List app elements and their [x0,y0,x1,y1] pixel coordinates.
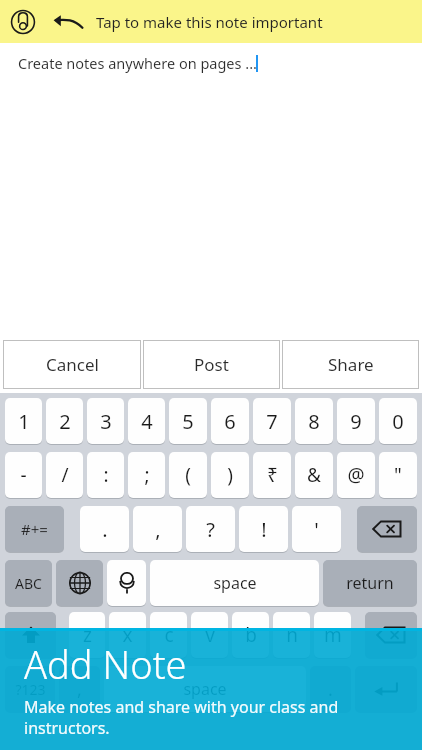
other: Back [52,11,84,33]
button[interactable] [5,612,56,658]
staticText: ) [227,462,233,488]
button[interactable]: " [379,452,417,498]
staticText: - [20,462,27,488]
staticText: Cancel [46,353,99,376]
button[interactable]: 2 [46,398,83,444]
staticText: 8 [308,408,320,435]
button[interactable]: 3 [87,398,124,444]
staticText: Share [328,353,374,376]
button[interactable]: - [5,452,42,498]
staticText: #+= [21,519,48,539]
staticText: b [245,622,257,648]
button[interactable]: @ [337,452,375,498]
staticText: 3 [100,408,112,435]
staticText: 2 [59,408,71,435]
staticText: z [83,622,92,648]
staticText: Add Note [24,638,187,690]
staticText: c [164,622,174,648]
button[interactable]: n [273,612,310,658]
button[interactable]: . [310,666,351,712]
staticText: Create notes anywhere on pages ... [18,53,257,73]
button[interactable]: return [323,560,417,606]
button[interactable]: / [46,452,83,498]
button[interactable]: Mark important [0,0,422,43]
staticText: Make notes and share with your class and… [24,696,392,739]
staticText: v [205,622,215,648]
staticText: ₹ [267,462,278,488]
button[interactable]: ABC [5,560,52,606]
button[interactable]: ' [292,506,341,552]
staticText: , [77,677,82,702]
button[interactable] [365,612,417,658]
staticText: & [307,462,321,488]
staticText: ? [206,516,215,543]
button[interactable]: 4 [128,398,165,444]
button[interactable]: Cancel [4,341,140,388]
button[interactable]: x [109,612,146,658]
staticText: : [103,462,109,488]
staticText: Tap to make this note important [96,12,323,32]
button[interactable]: Voice input [107,560,146,606]
staticText: ; [144,462,150,488]
button[interactable]: ( [169,452,207,498]
button[interactable]: & [295,452,333,498]
staticText: , [155,516,161,543]
staticText: 0 [392,408,404,435]
button[interactable]: Change keyboard [56,560,103,606]
button[interactable]: m [314,612,351,658]
staticText: 1 [18,408,30,435]
button[interactable]: 9 [337,398,375,444]
staticText: . [102,516,108,543]
staticText: n [286,622,298,648]
button[interactable]: Share [283,341,418,388]
button[interactable]: 5 [169,398,207,444]
button[interactable]: Backspace [357,506,417,552]
staticText: ' [314,516,319,543]
button[interactable]: c [150,612,187,658]
button[interactable]: ?123 [5,666,55,712]
button[interactable]: z [69,612,105,658]
button[interactable]: : [87,452,124,498]
button[interactable]: 1 [5,398,42,444]
staticText: space [213,572,257,594]
staticText: return [346,572,394,594]
button[interactable]: Mark important [8,7,38,37]
button[interactable]: 0 [379,398,417,444]
staticText: ABC [15,574,42,593]
staticText: ?123 [15,680,46,699]
staticText: 7 [266,408,278,435]
staticText: x [122,622,133,648]
button[interactable]: ) [211,452,249,498]
button[interactable]: , [59,666,100,712]
button[interactable]: space [150,560,319,606]
other: Backspace [372,519,402,539]
staticText: @ [347,462,365,488]
button[interactable]: b [232,612,269,658]
button[interactable]: 7 [253,398,291,444]
staticText: / [61,462,69,488]
button[interactable]: ! [239,506,288,552]
button[interactable]: , [133,506,182,552]
button[interactable]: v [191,612,228,658]
button[interactable]: Post [144,341,279,388]
button[interactable]: ? [186,506,235,552]
button[interactable]: Add Note [0,628,422,750]
staticText: ( [185,462,191,488]
staticText: " [394,462,402,488]
button[interactable]: 8 [295,398,333,444]
button[interactable]: ₹ [253,452,291,498]
button[interactable]: . [80,506,129,552]
button[interactable]: 6 [211,398,249,444]
button[interactable]: #+= [5,506,64,552]
button[interactable]: ; [128,452,165,498]
other: Voice input [117,571,137,595]
staticText: 6 [224,408,236,435]
staticText: m [324,622,342,648]
button[interactable]: space [104,666,306,712]
staticText: Post [194,353,229,376]
staticText: 9 [350,408,362,435]
staticText: 4 [141,408,153,435]
other: Change keyboard [69,572,91,594]
